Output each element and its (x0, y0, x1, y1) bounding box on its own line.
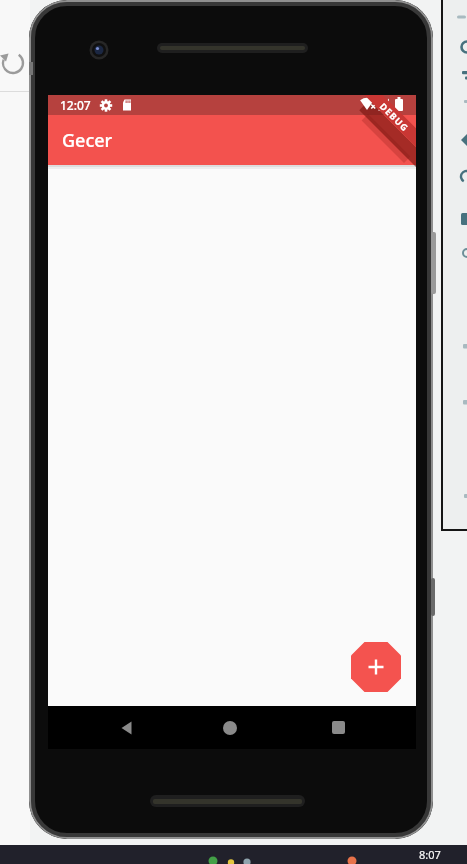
button[interactable] (0, 50, 26, 76)
staticText: DEBUG (378, 100, 412, 134)
button[interactable] (107, 706, 147, 749)
button[interactable] (443, 0, 467, 530)
button[interactable] (210, 706, 250, 749)
button[interactable] (318, 706, 358, 749)
staticText: Gecer (62, 128, 113, 153)
staticText: 8:07 (419, 847, 441, 862)
button[interactable] (351, 642, 401, 692)
staticText: 12:07 (60, 97, 91, 113)
